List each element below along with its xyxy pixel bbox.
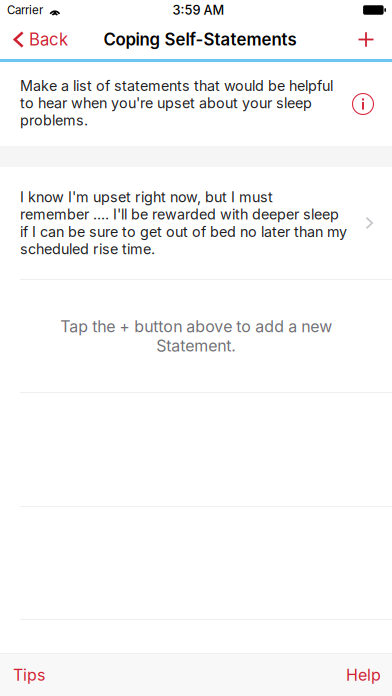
button[interactable]: Help [330, 654, 392, 696]
button[interactable]: Information [351, 92, 392, 115]
staticText: I know I'm upset right now, but I must r… [20, 188, 347, 258]
staticText: Coping Self-Statements [103, 29, 296, 50]
button[interactable]: Tips [0, 654, 61, 696]
staticText: Back [29, 29, 68, 50]
staticText: Tips [13, 665, 45, 685]
button[interactable]: Back [0, 20, 78, 59]
staticText: Tap the + button above to add a new Stat… [60, 317, 332, 355]
staticText: Make a list of statements that would be … [20, 77, 333, 129]
staticText: Carrier [7, 3, 43, 17]
staticText: 3:59 AM [172, 2, 224, 18]
button[interactable]: I know I'm upset right now, but I must r… [0, 167, 392, 279]
button[interactable]: Add Statement [344, 20, 392, 59]
staticText: Help [346, 665, 381, 685]
